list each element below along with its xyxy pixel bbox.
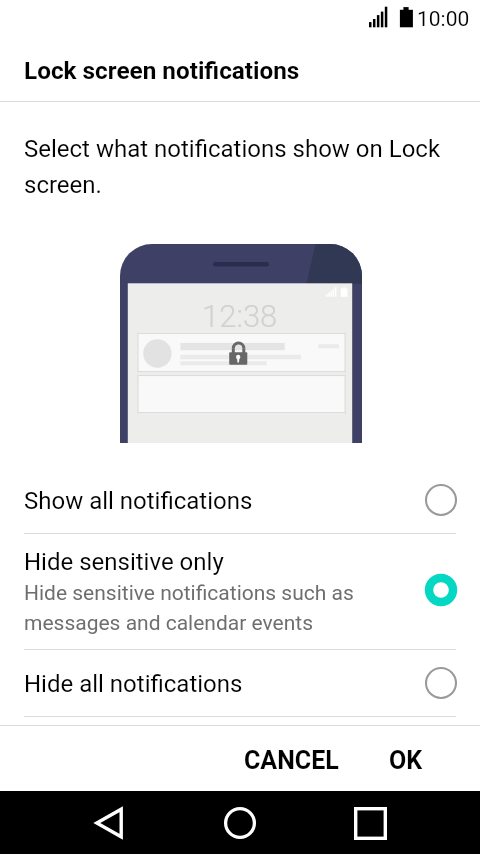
staticText: CANCEL bbox=[244, 746, 339, 775]
staticText: Lock screen notifications bbox=[24, 56, 300, 84]
button[interactable]: Recent apps bbox=[339, 792, 401, 854]
staticText: Hide all notifications bbox=[24, 670, 243, 698]
staticText: Show all notifications bbox=[24, 487, 253, 515]
button[interactable]: Back bbox=[78, 792, 140, 854]
staticText: 10:00 bbox=[417, 7, 470, 32]
button[interactable]: Hide all notifications bbox=[0, 650, 480, 716]
button[interactable]: Home bbox=[209, 792, 271, 854]
staticText: OK bbox=[389, 746, 423, 775]
staticText: Hide sensitive only bbox=[24, 548, 224, 576]
button[interactable]: Show all notifications bbox=[0, 462, 480, 533]
staticText: Hide sensitive notifications such as mes… bbox=[24, 581, 422, 636]
button[interactable]: OK bbox=[374, 732, 438, 784]
staticText: Select what notifications show on Lock s… bbox=[24, 135, 444, 199]
button[interactable]: Hide sensitive only bbox=[0, 534, 480, 649]
button[interactable]: CANCEL bbox=[228, 732, 355, 784]
staticText: 12:38 bbox=[202, 298, 278, 334]
